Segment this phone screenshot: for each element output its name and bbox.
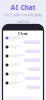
staticText: AI Chat [10,3,35,12]
staticText: with AI [17,19,29,24]
staticText: Chat [18,31,28,36]
staticText: Let's talk comfortably [4,12,42,17]
